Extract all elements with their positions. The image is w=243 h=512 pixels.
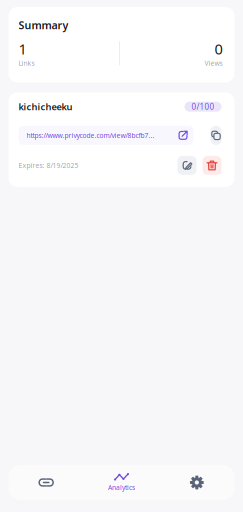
staticText: kichicheeku	[18, 100, 72, 113]
staticText: 1	[18, 39, 26, 59]
button[interactable]: Settings	[159, 465, 234, 500]
staticText: https://www.privycode.com/view/8bcfb7...	[26, 131, 154, 140]
button[interactable]: Analytics	[84, 465, 159, 500]
staticText: Analytics	[108, 483, 135, 492]
staticText: Summary	[18, 18, 68, 32]
staticText: 0	[214, 39, 222, 59]
button[interactable]: Links	[8, 465, 84, 500]
button[interactable]: Delete	[202, 156, 221, 175]
staticText: Views	[204, 59, 222, 67]
button[interactable]: Open link	[176, 126, 187, 145]
staticText: 0/100	[191, 101, 214, 112]
staticText: Links	[18, 59, 34, 67]
staticText: Expires: 8/19/2025	[18, 161, 78, 170]
button[interactable]: Copy link	[210, 126, 221, 145]
button[interactable]: Edit	[177, 156, 196, 175]
